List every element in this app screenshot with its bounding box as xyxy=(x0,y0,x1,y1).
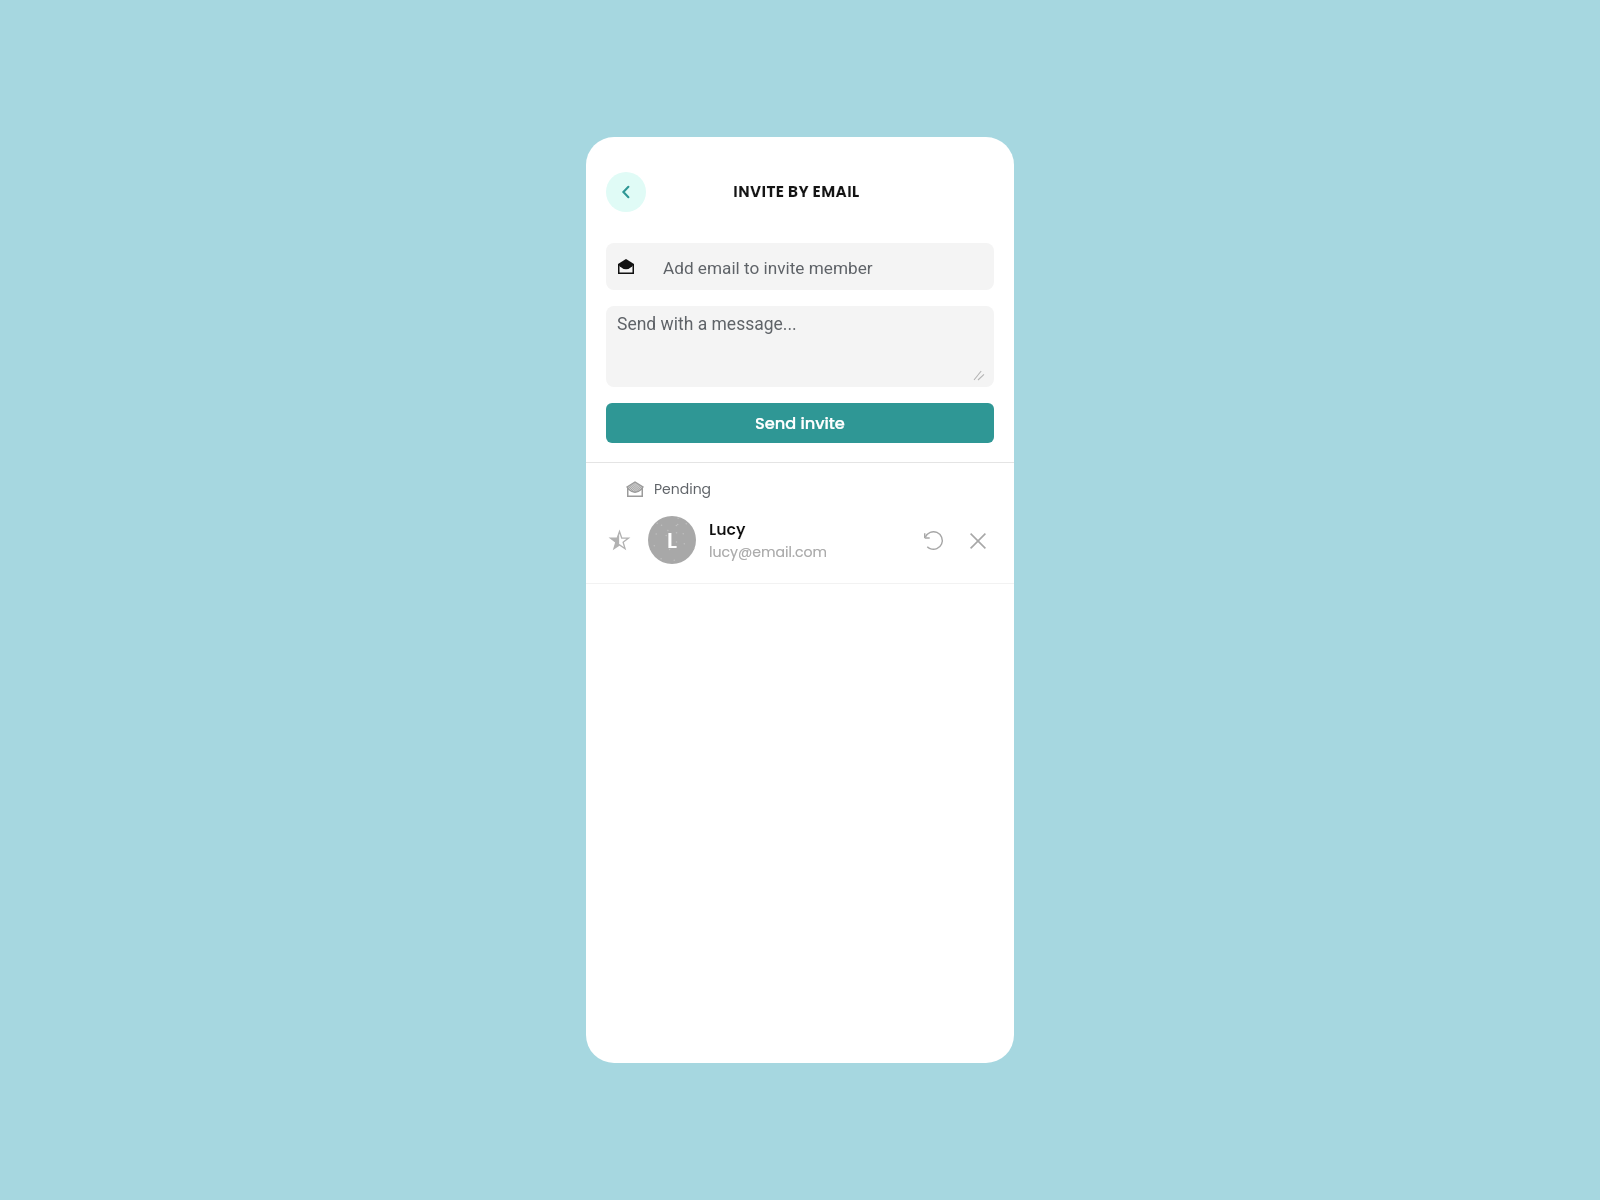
button[interactable]: Favourite xyxy=(586,516,1014,564)
staticText: lucy@email.com xyxy=(709,542,828,562)
button[interactable]: Send with a message... xyxy=(606,306,994,387)
button[interactable]: Add email to invite member xyxy=(606,243,994,290)
button[interactable]: Back xyxy=(606,172,646,212)
staticText: Send invite xyxy=(755,412,845,435)
staticText: INVITE BY EMAIL xyxy=(733,181,860,202)
staticText: Add email to invite member xyxy=(663,258,873,278)
staticText: Lucy xyxy=(709,519,746,541)
staticText: Pending xyxy=(654,479,712,499)
button[interactable]: Cancel invite xyxy=(964,527,991,554)
staticText: L xyxy=(667,525,677,556)
button[interactable]: Resend invite xyxy=(919,526,948,555)
button[interactable]: Send invite xyxy=(606,403,994,443)
staticText: Send with a message... xyxy=(617,314,797,335)
button[interactable]: Favourite xyxy=(605,526,633,554)
